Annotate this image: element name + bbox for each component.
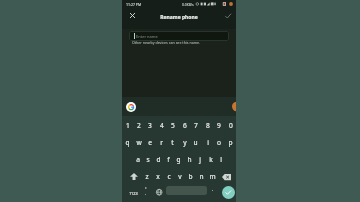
button[interactable]: y <box>179 136 190 149</box>
button[interactable]: b <box>185 170 196 183</box>
button[interactable]: m <box>207 170 218 183</box>
button[interactable]: 2 <box>133 119 144 132</box>
staticText: d <box>156 155 161 164</box>
staticText: 0 <box>229 121 233 130</box>
staticText: 3 <box>148 121 152 130</box>
button[interactable]: w <box>133 136 144 149</box>
staticText: v <box>178 172 182 181</box>
staticText: 2 <box>137 121 141 130</box>
button[interactable]: t <box>167 136 178 149</box>
staticText: 7 <box>194 121 198 130</box>
button[interactable]: 1 <box>122 116 236 202</box>
button[interactable]: s <box>142 153 153 166</box>
staticText: s <box>146 155 150 164</box>
button[interactable] <box>126 102 136 112</box>
button[interactable]: r <box>156 136 167 149</box>
staticText: k <box>209 155 213 164</box>
button[interactable]: u <box>190 136 201 149</box>
button[interactable]: o <box>213 136 224 149</box>
staticText: q <box>125 138 130 147</box>
button[interactable]: 7 <box>190 119 201 132</box>
button[interactable]: a <box>132 153 143 166</box>
button[interactable] <box>156 189 162 195</box>
button[interactable]: e <box>144 136 155 149</box>
staticText: 0.0KB/s <box>182 2 194 6</box>
button[interactable]: v <box>174 170 185 183</box>
button[interactable]: h <box>184 153 195 166</box>
staticText: r <box>160 138 163 147</box>
staticText: c <box>167 172 171 181</box>
staticText: o <box>217 138 221 147</box>
staticText: 9 <box>217 121 221 130</box>
button[interactable] <box>130 13 135 18</box>
button[interactable]: 9 <box>213 119 224 132</box>
staticText: z <box>145 172 149 181</box>
staticText: 1 <box>126 121 130 130</box>
staticText: , <box>145 191 146 195</box>
button[interactable]: 5 <box>167 119 178 132</box>
button[interactable]: i <box>202 136 213 149</box>
button[interactable]: 8 <box>202 119 213 132</box>
button[interactable] <box>222 186 235 199</box>
staticText: p <box>228 138 233 147</box>
button[interactable]: 3 <box>144 119 155 132</box>
button[interactable]: 4 <box>156 119 167 132</box>
staticText: f <box>167 155 170 164</box>
button[interactable]: 6 <box>179 119 190 132</box>
button[interactable]: n <box>196 170 207 183</box>
staticText: . <box>212 186 214 192</box>
staticText: j <box>199 155 201 164</box>
staticText: m <box>209 172 216 181</box>
button[interactable]: x <box>152 170 163 183</box>
button[interactable]: 0 <box>225 119 236 132</box>
staticText: t <box>171 138 174 147</box>
staticText: h <box>187 155 192 164</box>
staticText: l <box>220 155 222 164</box>
button[interactable]: ?123 <box>125 188 142 198</box>
staticText: 5 <box>171 121 175 130</box>
staticText: Rename phone <box>160 14 198 21</box>
button[interactable]: d <box>153 153 164 166</box>
staticText: i <box>207 138 209 147</box>
button[interactable]: k <box>205 153 216 166</box>
staticText: 11:27 PM <box>126 2 142 7</box>
staticText: 6 <box>183 121 187 130</box>
staticText: e <box>148 138 152 147</box>
staticText: ° <box>145 187 147 191</box>
staticText: g <box>176 155 181 164</box>
button[interactable]: z <box>141 170 152 183</box>
button[interactable]: p <box>225 136 236 149</box>
staticText: a <box>136 155 140 164</box>
button[interactable] <box>130 173 138 180</box>
staticText: ?123 <box>129 191 138 196</box>
staticText: y <box>183 138 187 147</box>
staticText: Other nearby devices can see this name. <box>132 40 201 45</box>
staticText: x <box>156 172 160 181</box>
button[interactable]: q <box>122 136 133 149</box>
button[interactable]: l <box>215 153 226 166</box>
staticText: u <box>193 138 198 147</box>
button[interactable]: c <box>163 170 174 183</box>
button[interactable] <box>225 13 232 19</box>
staticText: n <box>199 172 204 181</box>
staticText: 8 <box>206 121 210 130</box>
button[interactable]: 1 <box>122 119 133 132</box>
staticText: w <box>136 138 142 147</box>
staticText: Enter name <box>136 34 158 39</box>
button[interactable]: f <box>163 153 174 166</box>
button[interactable]: g <box>173 153 184 166</box>
button[interactable]: j <box>194 153 205 166</box>
staticText: 4 <box>160 121 164 130</box>
staticText: b <box>188 172 193 181</box>
button[interactable] <box>222 174 231 180</box>
button[interactable]: Enter name <box>129 31 229 41</box>
